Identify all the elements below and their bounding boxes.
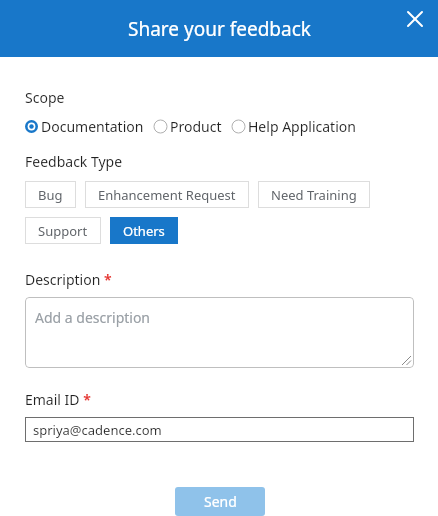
button[interactable]: Close bbox=[400, 4, 430, 34]
button[interactable]: Others bbox=[110, 217, 178, 244]
button[interactable]: Send bbox=[175, 487, 265, 516]
staticText: Help Application bbox=[248, 117, 356, 136]
staticText: Bug bbox=[38, 186, 63, 204]
button[interactable]: Need Training bbox=[258, 181, 370, 208]
staticText: Enhancement Request bbox=[98, 186, 236, 204]
button[interactable]: Product bbox=[154, 117, 222, 136]
staticText: Documentation bbox=[41, 117, 144, 136]
staticText: Support bbox=[38, 222, 88, 240]
button[interactable]: Documentation bbox=[25, 117, 144, 136]
button[interactable]: Bug bbox=[25, 181, 76, 208]
staticText: Need Training bbox=[271, 186, 357, 204]
button[interactable]: Enhancement Request bbox=[85, 181, 249, 208]
button[interactable]: spriya@cadence.com bbox=[25, 417, 414, 442]
staticText: Share your feedback bbox=[128, 16, 311, 42]
staticText: Add a description bbox=[35, 308, 151, 327]
staticText: Description * bbox=[25, 270, 112, 289]
staticText: Send bbox=[204, 492, 237, 511]
staticText: Product bbox=[170, 117, 222, 136]
staticText: Feedback Type bbox=[25, 152, 123, 171]
staticText: Email ID * bbox=[25, 390, 91, 409]
button[interactable]: Help Application bbox=[232, 117, 356, 136]
staticText: Scope bbox=[25, 88, 65, 107]
button[interactable]: Add a description bbox=[25, 297, 414, 368]
staticText: spriya@cadence.com bbox=[33, 421, 162, 439]
staticText: Others bbox=[123, 222, 165, 240]
button[interactable]: Support bbox=[25, 217, 101, 244]
